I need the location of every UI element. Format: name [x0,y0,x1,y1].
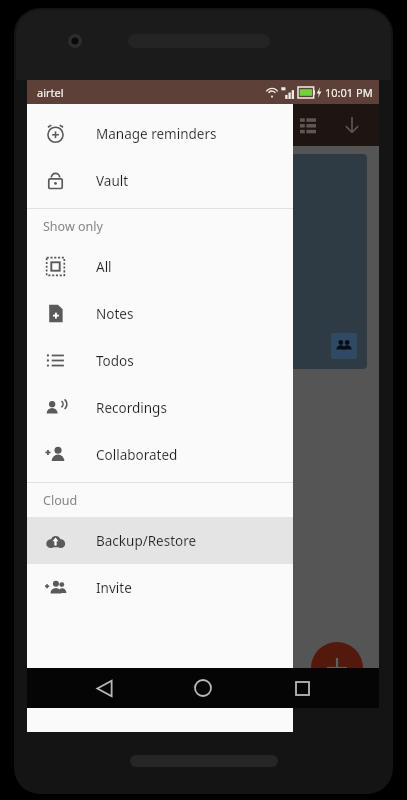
button[interactable]: Collaborated [27,431,293,478]
button[interactable]: Backup/Restore [27,517,293,564]
staticText: Manage reminders [96,125,217,143]
staticText: airtel [37,85,64,100]
button[interactable]: Tue, 12 Apr 21:49 PM [35,154,367,369]
button[interactable]: Invite [27,564,293,611]
staticText: All [96,258,112,276]
button[interactable]: Todos [27,337,293,384]
staticText: Todos [96,352,134,370]
staticText: Recordings [96,399,167,417]
button[interactable]: Manage reminders [27,110,293,157]
staticText: 10:01 PM [325,85,373,100]
staticText: Cloud [43,492,78,509]
button[interactable]: Sort [337,110,367,140]
button[interactable]: Home [181,668,225,708]
staticText: Collaborated [96,446,178,464]
staticText: Some notes [47,187,125,206]
button[interactable]: Notes [27,290,293,337]
staticText: Notes [96,305,134,323]
staticText: Show only [43,218,103,235]
staticText: Invite [96,579,132,597]
button[interactable]: Recordings [27,384,293,431]
staticText: Vault [96,172,129,190]
staticText: Backup/Restore [96,532,197,550]
button[interactable]: Vault [27,157,293,204]
button[interactable]: All [27,243,293,290]
staticText: This one is DONE [47,263,160,282]
button[interactable]: Add note [311,642,363,694]
button[interactable]: Collaborators [331,333,357,359]
button[interactable]: View mode [293,110,323,140]
button[interactable]: Recents [280,668,324,708]
button[interactable]: Back [82,668,126,708]
staticText: Tue, 12 Apr 21:49 PM [47,166,150,181]
